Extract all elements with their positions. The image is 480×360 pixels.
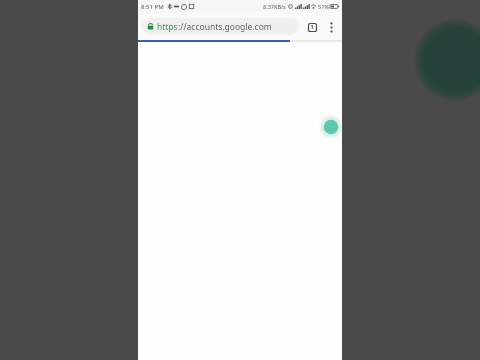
staticText: 8:51 PM — [141, 3, 164, 11]
button[interactable]: https — [142, 18, 299, 35]
staticText: 1 — [310, 23, 314, 31]
button[interactable]: Switch tabs — [304, 19, 320, 35]
staticText: 8.37KB/s — [263, 3, 286, 10]
button[interactable]: More options — [323, 19, 339, 35]
staticText: https — [157, 21, 178, 33]
staticText: 51% — [318, 3, 329, 10]
staticText: ://accounts.google.com — [178, 21, 272, 33]
